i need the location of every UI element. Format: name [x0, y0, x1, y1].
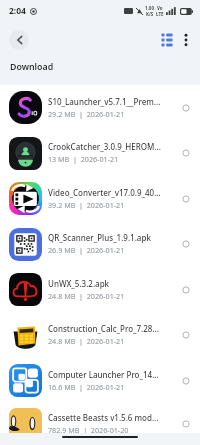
button[interactable]: Video_Converter_v17.0.9_40...	[0, 176, 200, 221]
staticText: S10_Launcher_v5.7.1__Prem...	[48, 96, 161, 107]
button[interactable]: QR_Scanner_Plus_1.9.1.apk	[0, 221, 200, 267]
button[interactable]: UnWX_5.3.2.apk	[0, 267, 200, 312]
button[interactable]: List view	[157, 30, 177, 50]
button[interactable]: Computer Launcher Pro_14...	[0, 358, 200, 403]
button[interactable]: CrookCatcher_3.0.9_HEROM...	[0, 130, 200, 176]
button[interactable]: S10_Launcher_v5.7.1__Prem...	[0, 85, 200, 130]
staticText: Construction_Calc_Pro_7.28...	[48, 323, 159, 334]
button[interactable]: Select item	[175, 370, 197, 392]
button[interactable]: Select item	[175, 233, 197, 255]
button[interactable]: Construction_Calc_Pro_7.28...	[0, 312, 200, 358]
button[interactable]: Select item	[175, 97, 197, 119]
staticText: 782.9 MB | 2026-01-20	[48, 425, 129, 435]
staticText: UnWX_5.3.2.apk	[48, 278, 110, 289]
staticText: 13 MB | 2026-01-21	[48, 154, 119, 164]
staticText: LTE	[156, 11, 164, 17]
staticText: 16.6 MB | 2026-01-21	[48, 382, 125, 392]
staticText: 26.9 MB | 2026-01-21	[48, 245, 125, 255]
button[interactable]: Select item	[175, 324, 197, 346]
button[interactable]: Select item	[175, 142, 197, 164]
staticText: 24.8 MB | 2026-01-21	[48, 291, 125, 301]
staticText: 39.2 MB | 2026-01-21	[48, 200, 125, 210]
staticText: QR_Scanner_Plus_1.9.1.apk	[48, 232, 151, 243]
staticText: Vo	[157, 5, 163, 11]
staticText: Video_Converter_v17.0.9_40...	[48, 187, 161, 198]
button[interactable]: Back	[9, 30, 29, 50]
staticText: 1.00	[145, 5, 154, 11]
staticText: Download	[10, 61, 54, 73]
staticText: K/S	[146, 11, 154, 17]
staticText: Computer Launcher Pro_14...	[48, 369, 159, 380]
staticText: 29.2 MB | 2026-01-21	[48, 109, 125, 119]
staticText: Cassette Beasts v1.5.6 mod...	[48, 412, 159, 423]
button[interactable]: Select item	[175, 413, 197, 435]
staticText: 2:04	[9, 5, 26, 17]
button[interactable]: Select item	[175, 279, 197, 301]
button[interactable]: Select item	[175, 188, 197, 210]
staticText: 24.8 MB | 2026-01-21	[48, 336, 125, 346]
button[interactable]: More options	[177, 31, 195, 49]
button[interactable]: Cassette Beasts v1.5.6 mod...	[0, 403, 200, 445]
staticText: CrookCatcher_3.0.9_HEROM...	[48, 141, 161, 152]
